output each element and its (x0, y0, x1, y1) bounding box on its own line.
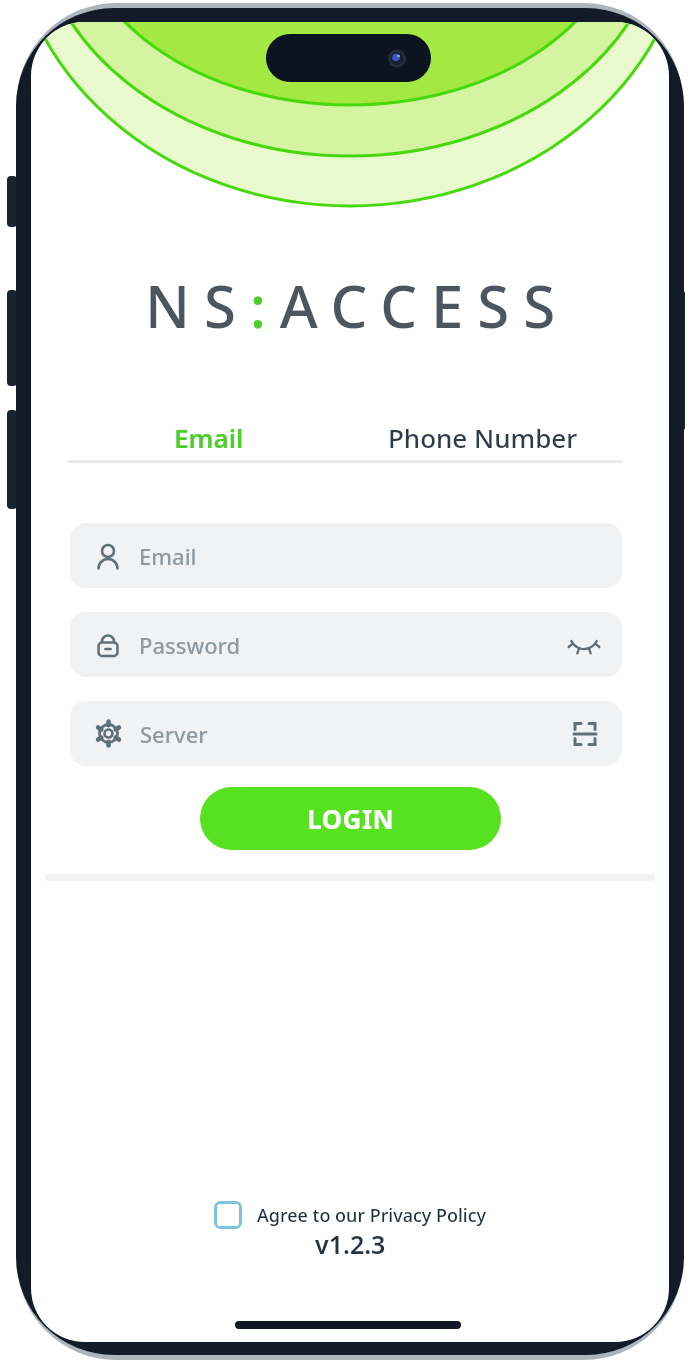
button[interactable]: LOGIN (200, 787, 501, 850)
staticText: Email (174, 420, 244, 455)
button[interactable]: Phone Number (348, 410, 618, 464)
staticText: Agree to our Privacy Policy (257, 1203, 486, 1228)
staticText: v1.2.3 (315, 1227, 386, 1261)
staticText: Email (139, 541, 197, 571)
button[interactable]: Email (64, 410, 354, 464)
staticText: Password (139, 630, 241, 660)
button[interactable]: Password (70, 612, 622, 677)
staticText: NS:ACCESS (145, 266, 570, 338)
staticText: Server (140, 719, 208, 749)
button[interactable]: Agree to our Privacy Policy (214, 1201, 486, 1229)
button[interactable]: Email (70, 523, 622, 588)
button[interactable]: Server (70, 701, 622, 766)
staticText: Phone Number (388, 420, 578, 455)
staticText: LOGIN (307, 801, 395, 836)
